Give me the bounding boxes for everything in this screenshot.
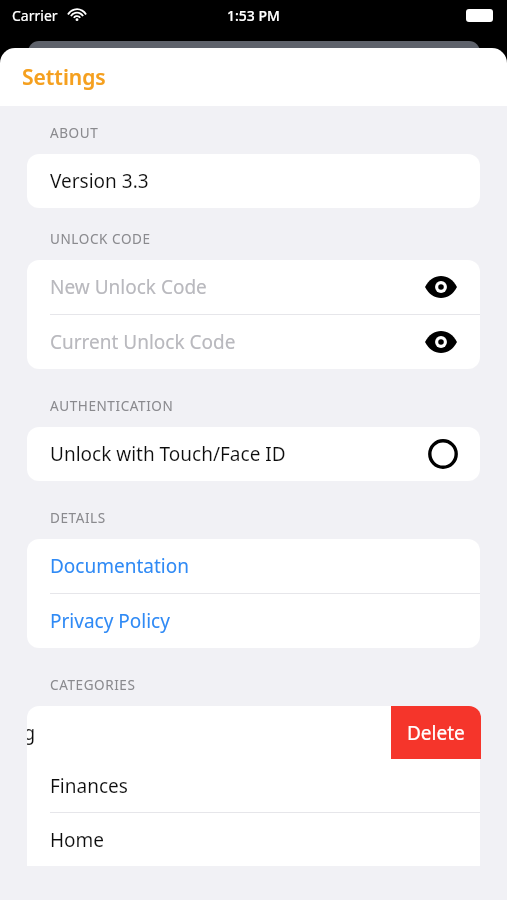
button[interactable]: Privacy Policy (27, 594, 480, 648)
staticText: ting (27, 720, 36, 746)
staticText: AUTHENTICATION (50, 397, 174, 415)
button[interactable]: Show current unlock code (424, 325, 458, 359)
staticText: Version 3.3 (50, 168, 149, 194)
staticText: Unlock with Touch/Face ID (50, 441, 286, 467)
button[interactable]: Delete (391, 706, 481, 759)
button[interactable]: ting (27, 706, 480, 759)
button[interactable]: Finances (27, 759, 480, 812)
button[interactable]: Settings (22, 63, 106, 92)
staticText: Finances (50, 773, 128, 799)
button[interactable]: Current Unlock Code (27, 315, 480, 369)
staticText: UNLOCK CODE (50, 230, 151, 248)
staticText: Privacy Policy (50, 608, 170, 634)
button[interactable]: Show new unlock code (424, 270, 458, 304)
button[interactable]: Version 3.3 (27, 154, 480, 208)
staticText: New Unlock Code (50, 274, 207, 300)
staticText: Delete (407, 720, 465, 746)
button[interactable]: New Unlock Code (27, 260, 480, 314)
button[interactable]: Home (27, 813, 480, 866)
button[interactable]: Unlock with Touch/Face ID (27, 427, 480, 481)
staticText: DETAILS (50, 509, 106, 527)
staticText: Carrier (12, 6, 58, 25)
staticText: Home (50, 827, 105, 853)
staticText: CATEGORIES (50, 676, 136, 694)
staticText: ABOUT (50, 124, 99, 142)
staticText: 1:53 PM (227, 6, 280, 25)
button[interactable]: Documentation (27, 539, 480, 593)
staticText: Documentation (50, 553, 189, 579)
staticText: Current Unlock Code (50, 329, 236, 355)
